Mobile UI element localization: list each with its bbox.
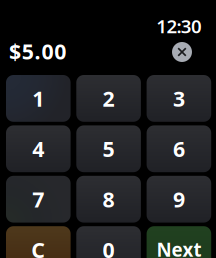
- staticText: 1: [32, 84, 44, 112]
- staticText: 3: [173, 84, 185, 112]
- button[interactable]: 5: [76, 125, 141, 172]
- staticText: 0: [103, 235, 115, 258]
- button[interactable]: 9: [147, 176, 211, 223]
- button[interactable]: 1: [6, 75, 71, 122]
- staticText: 2: [103, 84, 115, 112]
- staticText: 5: [103, 135, 115, 163]
- staticText: C: [31, 235, 45, 258]
- button[interactable]: 3: [147, 75, 211, 122]
- button[interactable]: Close: [172, 42, 192, 62]
- staticText: $5.00: [9, 37, 66, 65]
- staticText: 7: [32, 185, 44, 213]
- staticText: 6: [173, 135, 185, 163]
- button[interactable]: 2: [76, 75, 141, 122]
- button[interactable]: 6: [147, 125, 211, 172]
- button[interactable]: 0: [76, 226, 141, 258]
- button[interactable]: 4: [6, 125, 71, 172]
- button[interactable]: 7: [6, 176, 71, 223]
- staticText: 9: [173, 185, 185, 213]
- staticText: 12:30: [156, 14, 202, 38]
- button[interactable]: C: [6, 226, 71, 258]
- button[interactable]: Next: [147, 226, 211, 258]
- staticText: 4: [32, 135, 44, 163]
- staticText: Next: [156, 237, 201, 258]
- staticText: 8: [103, 185, 115, 213]
- button[interactable]: 8: [76, 176, 141, 223]
